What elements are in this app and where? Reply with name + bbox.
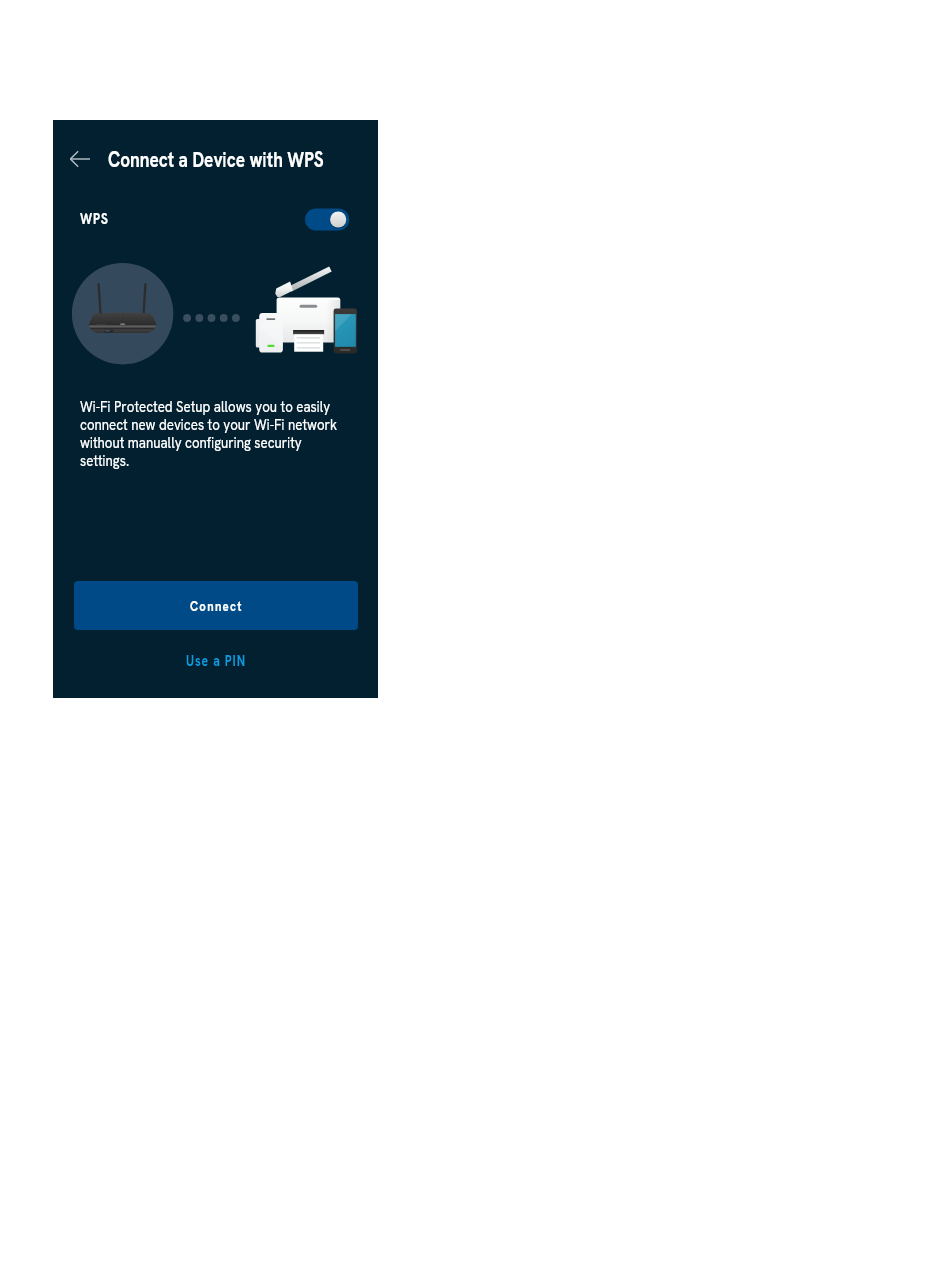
staticText: Use a PIN [186, 651, 246, 670]
staticText: Connect [190, 597, 243, 615]
staticText: WPS [80, 209, 109, 229]
button[interactable]: Navigate back [61, 140, 99, 178]
staticText: Wi-Fi Protected Setup allows you to easi… [80, 396, 339, 470]
button[interactable]: WPS [53, 199, 378, 239]
button[interactable]: Use a PIN [74, 640, 358, 680]
button[interactable]: Connect [74, 581, 358, 630]
staticText: Connect a Device with WPS [108, 146, 324, 173]
